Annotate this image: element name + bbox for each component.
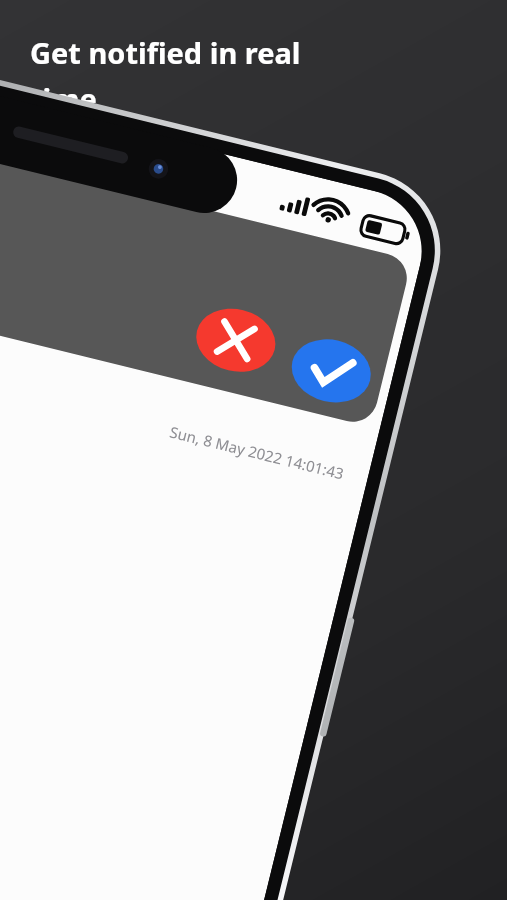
- button[interactable]: Decline call: [246, 302, 294, 346]
- button[interactable]: Accept call: [310, 310, 358, 354]
